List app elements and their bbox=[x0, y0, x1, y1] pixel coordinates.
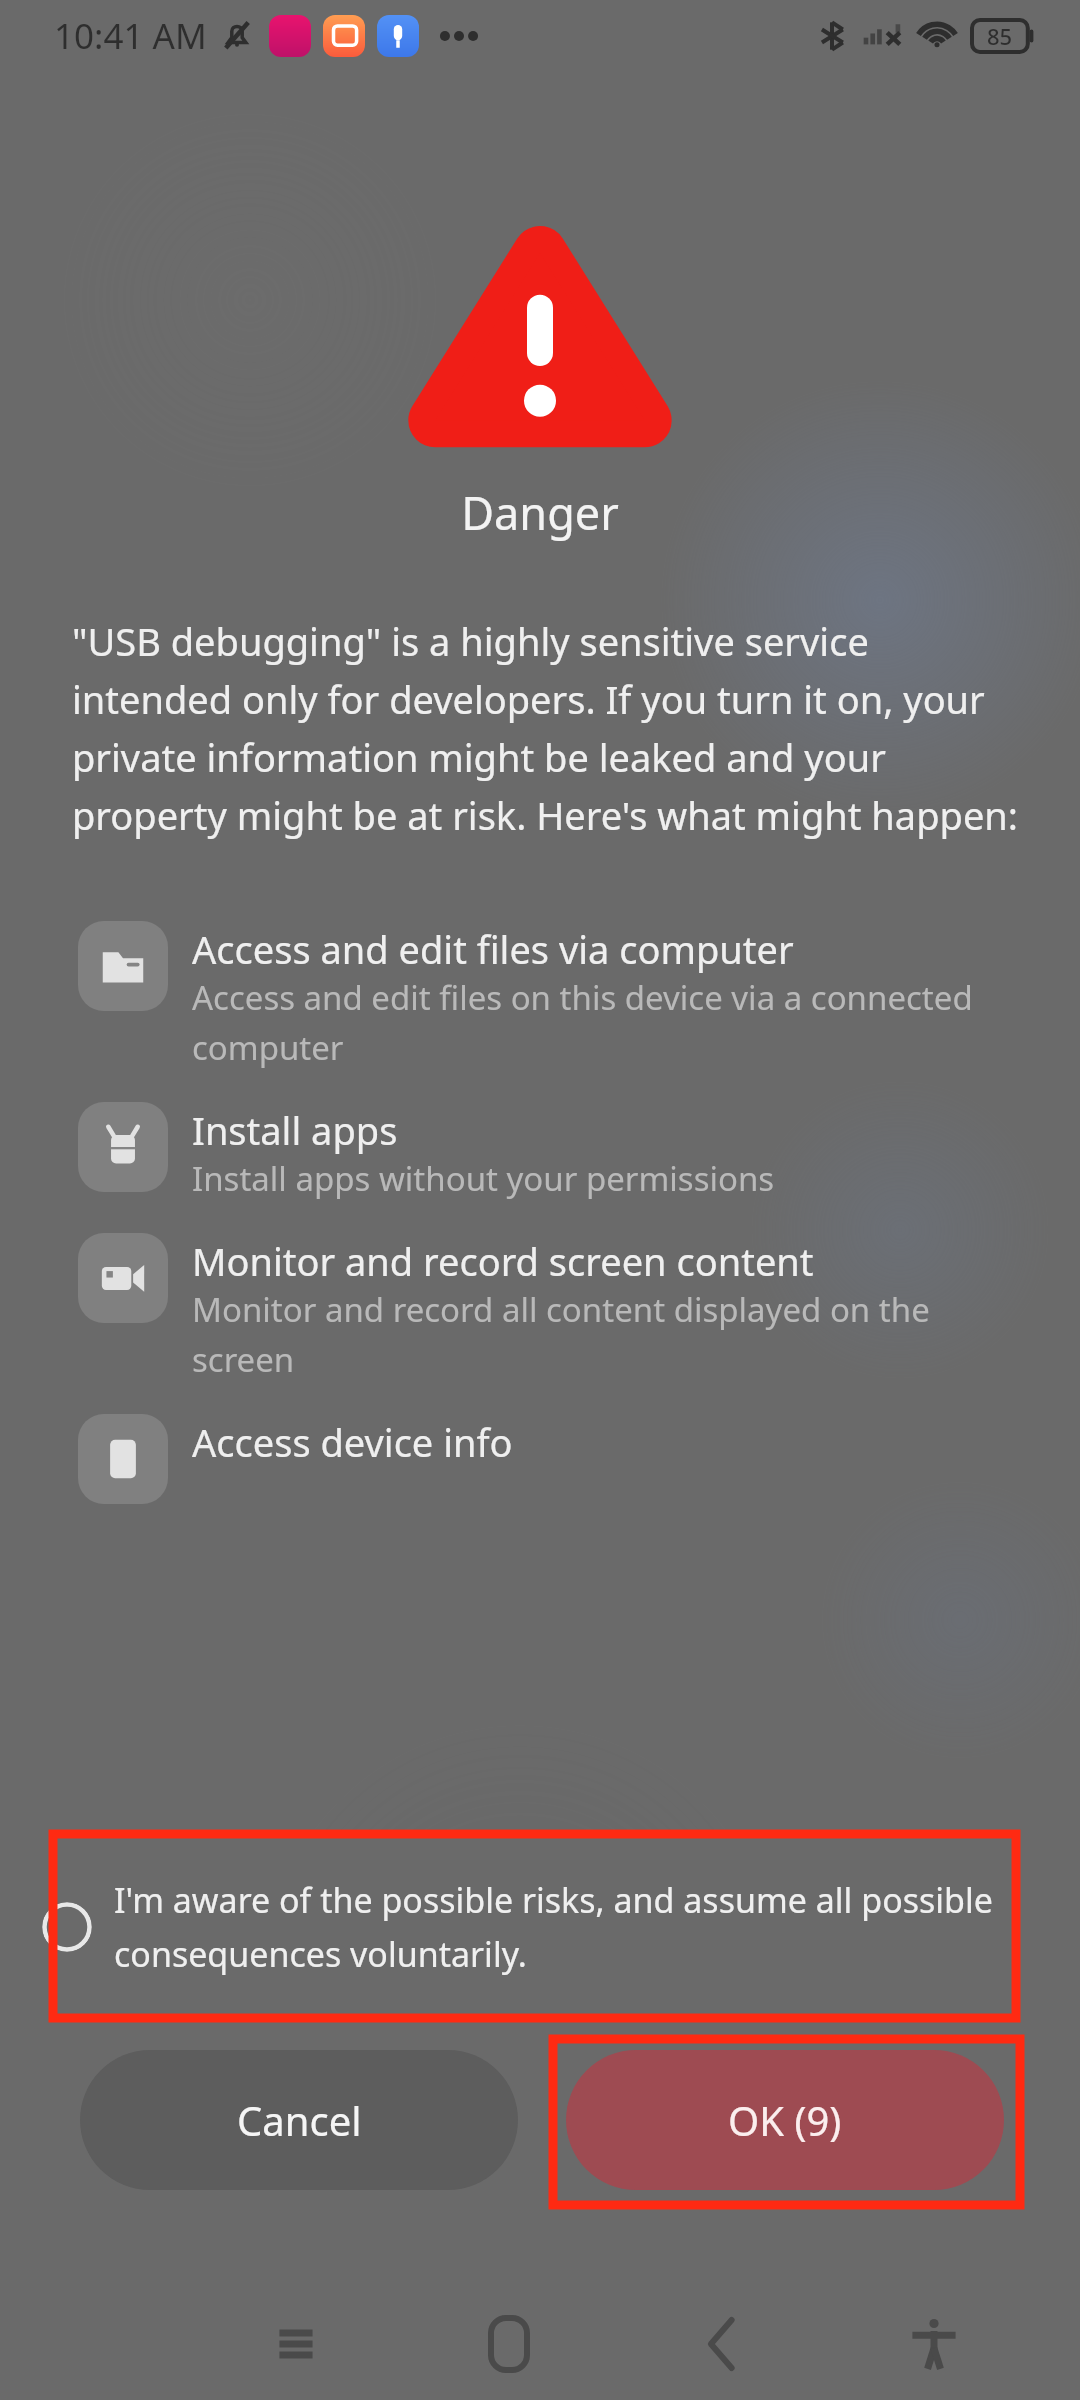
button[interactable]: I'm aware of the possible risks, and ass… bbox=[42, 1834, 1010, 2020]
staticText: Access and edit files via computer bbox=[192, 923, 794, 975]
staticText: Install apps without your permissions bbox=[192, 1156, 775, 1201]
button[interactable]: Back bbox=[675, 2298, 767, 2390]
staticText: Access device info bbox=[192, 1416, 513, 1468]
button[interactable]: Access and edit files via computer bbox=[78, 921, 1024, 1070]
staticText: 85 bbox=[987, 21, 1013, 51]
staticText: 10:41 AM bbox=[54, 12, 207, 60]
staticText: Danger bbox=[0, 482, 1080, 543]
staticText: I'm aware of the possible risks, and ass… bbox=[114, 1877, 1010, 1977]
staticText: "USB debugging" is a highly sensitive se… bbox=[72, 615, 1022, 841]
button[interactable]: Access device info bbox=[78, 1414, 1024, 1504]
staticText: Monitor and record screen content bbox=[192, 1235, 814, 1287]
button[interactable]: Accessibility bbox=[888, 2298, 980, 2390]
staticText: Install apps bbox=[192, 1104, 398, 1156]
button[interactable]: Monitor and record screen content bbox=[78, 1233, 1024, 1382]
button[interactable]: Recent apps bbox=[250, 2298, 342, 2390]
button[interactable]: Install apps bbox=[78, 1102, 1024, 1201]
staticText: Cancel bbox=[237, 2093, 362, 2147]
staticText: Access and edit files on this device via… bbox=[192, 975, 1024, 1070]
button[interactable]: Home bbox=[463, 2298, 555, 2390]
staticText: OK (9) bbox=[728, 2093, 842, 2147]
button[interactable]: Cancel bbox=[80, 2050, 518, 2190]
button[interactable]: OK (9) bbox=[566, 2050, 1004, 2190]
staticText: Monitor and record all content displayed… bbox=[192, 1287, 1024, 1382]
